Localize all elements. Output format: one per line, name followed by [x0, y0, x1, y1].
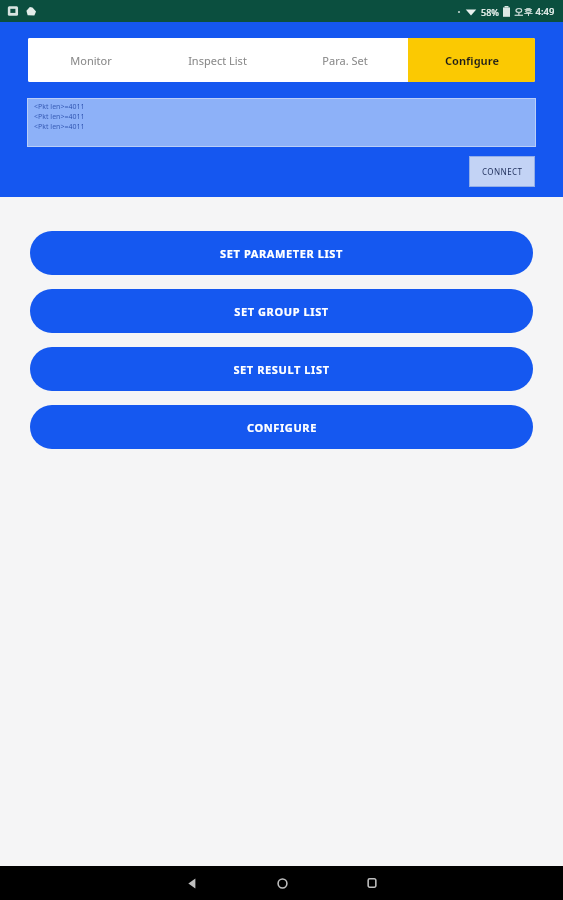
button[interactable]: Inspect List	[154, 38, 281, 82]
button[interactable]: SET GROUP LIST	[30, 289, 533, 333]
staticText: Inspect List	[188, 53, 247, 68]
staticText: SET RESULT LIST	[233, 362, 330, 377]
staticText: <Pkt len>=4011	[34, 102, 85, 112]
button[interactable]: SET RESULT LIST	[30, 347, 533, 391]
staticText: CONFIGURE	[247, 420, 317, 435]
staticText: <Pkt len>=4011	[34, 122, 85, 132]
button[interactable]: Configure	[408, 38, 535, 82]
button[interactable]: SET PARAMETER LIST	[30, 231, 533, 275]
staticText: Monitor	[70, 53, 112, 68]
staticText: <Pkt len>=4011	[34, 112, 85, 122]
button[interactable]: Monitor	[28, 38, 154, 82]
staticText: 58%	[481, 6, 499, 18]
button[interactable]: Para. Set	[281, 38, 408, 82]
staticText: Para. Set	[322, 53, 368, 68]
staticText: SET GROUP LIST	[234, 304, 329, 319]
button[interactable]: Back	[147, 866, 237, 900]
staticText: 오후 4:49	[514, 5, 555, 18]
button[interactable]: Home	[237, 866, 327, 900]
staticText: CONNECT	[482, 166, 523, 177]
button[interactable]: Recents	[327, 866, 417, 900]
staticText: SET PARAMETER LIST	[220, 246, 343, 261]
button[interactable]: CONNECT	[470, 157, 534, 186]
button[interactable]: CONFIGURE	[30, 405, 533, 449]
staticText: Configure	[445, 53, 499, 68]
